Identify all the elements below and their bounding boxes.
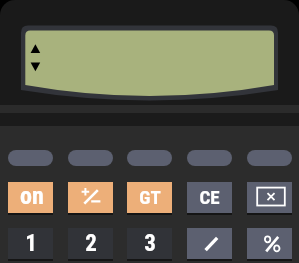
staticText: on (20, 182, 44, 210)
staticText: 3 (144, 230, 156, 257)
button[interactable]: Memory minus (127, 150, 172, 166)
button[interactable]: Memory (247, 150, 292, 166)
button[interactable]: Clear (247, 182, 292, 213)
button[interactable]: on (8, 182, 53, 213)
button[interactable]: Plus minus (68, 182, 113, 213)
button[interactable]: 3 (127, 228, 172, 259)
button[interactable]: Memory clear (8, 150, 53, 166)
button[interactable]: CE (187, 182, 232, 213)
button[interactable]: 1 (8, 228, 53, 259)
staticText: CE (199, 186, 220, 208)
other: Calculator display (21, 25, 278, 105)
button[interactable]: GT (127, 182, 172, 213)
button[interactable]: Memory plus (187, 150, 232, 166)
staticText: 2 (85, 230, 97, 257)
button[interactable]: Memory recall (68, 150, 113, 166)
button[interactable]: Divide (187, 228, 232, 259)
button[interactable]: 2 (68, 228, 113, 259)
staticText: GT (139, 186, 161, 208)
button[interactable]: Percent (247, 228, 292, 259)
staticText: 1 (25, 230, 37, 257)
